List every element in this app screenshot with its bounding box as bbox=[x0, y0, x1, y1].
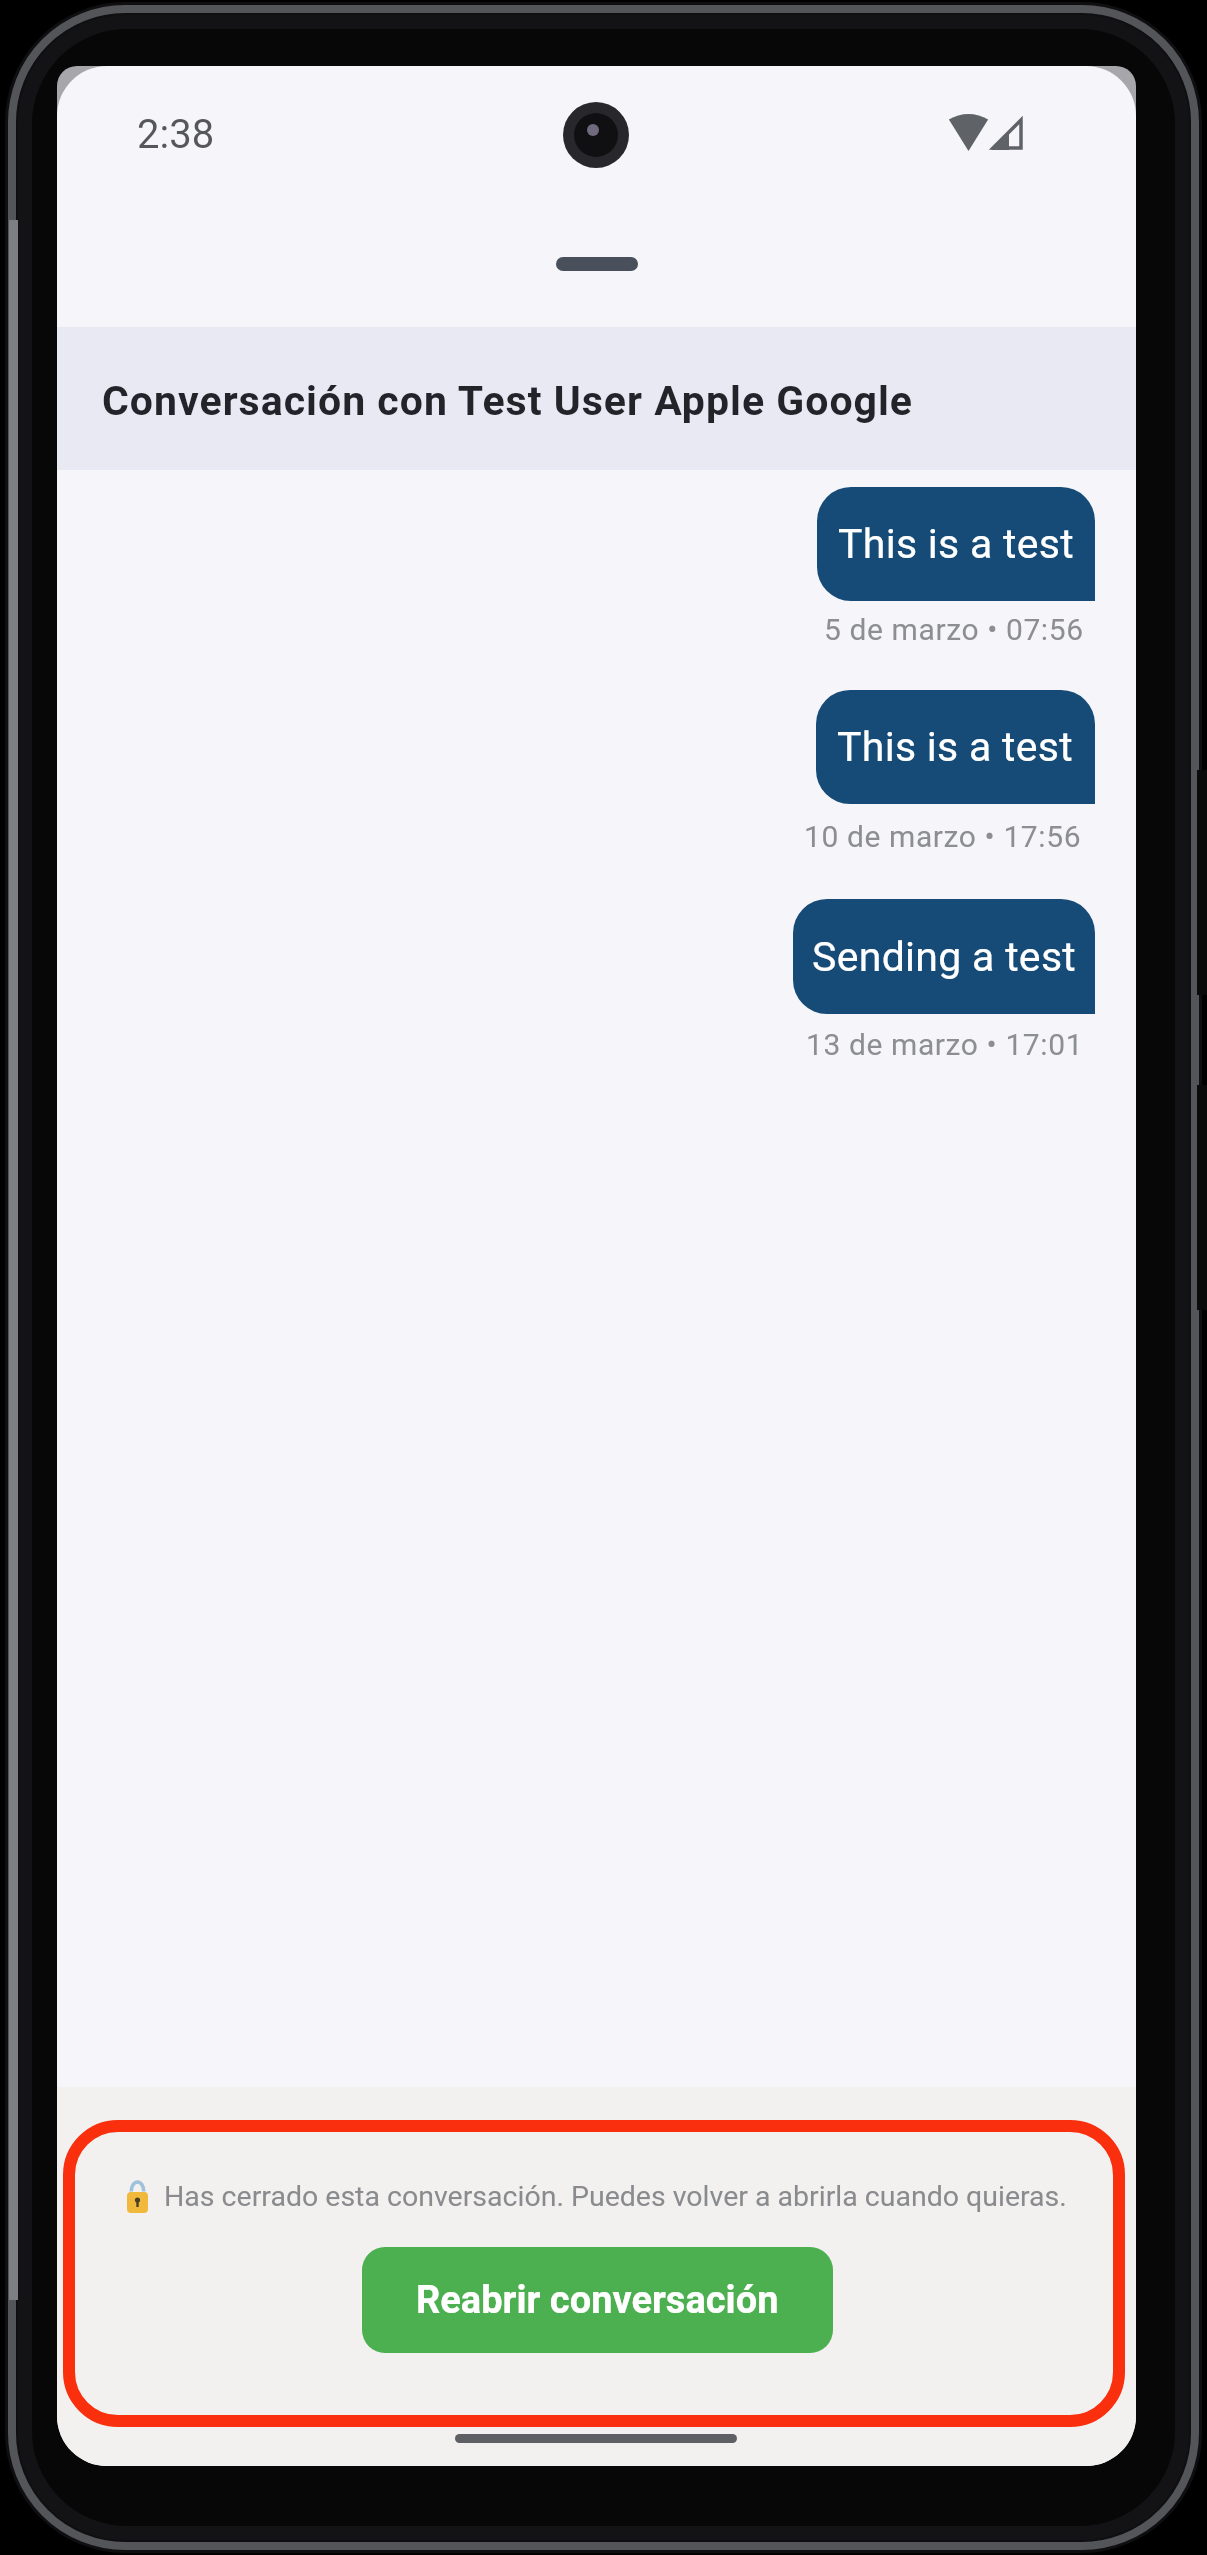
button[interactable]: Sending a test bbox=[793, 899, 1095, 1014]
staticText: Conversación con Test User Apple Google bbox=[102, 377, 914, 425]
staticText: 2:38 bbox=[137, 111, 215, 158]
staticText: Reabrir conversación bbox=[416, 2278, 779, 2323]
button[interactable]: Reabrir conversación bbox=[362, 2247, 833, 2353]
staticText: 10 de marzo • 17:56 bbox=[804, 819, 1082, 854]
button[interactable]: This is a test bbox=[816, 690, 1095, 804]
staticText: This is a test bbox=[837, 723, 1074, 771]
staticText: Has cerrado esta conversación. Puedes vo… bbox=[164, 2180, 1067, 2213]
staticText: 13 de marzo • 17:01 bbox=[806, 1027, 1084, 1062]
staticText: 5 de marzo • 07:56 bbox=[824, 612, 1084, 647]
button[interactable]: This is a test bbox=[817, 487, 1095, 601]
staticText: This is a test bbox=[838, 520, 1075, 568]
staticText: Sending a test bbox=[812, 933, 1077, 981]
